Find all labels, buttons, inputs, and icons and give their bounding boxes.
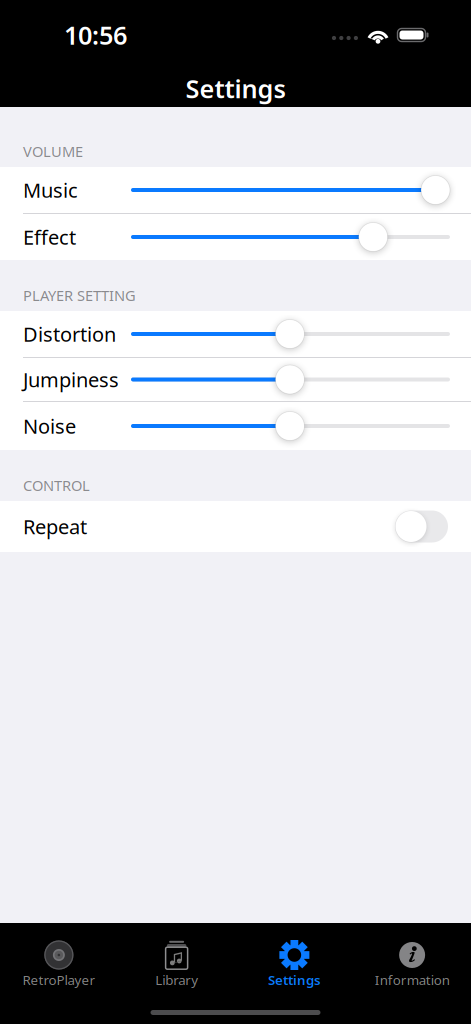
button[interactable]: Repeat <box>0 501 471 552</box>
staticText: Information <box>375 971 450 989</box>
button[interactable]: Library <box>118 923 236 1024</box>
button[interactable]: RetroPlayer <box>0 923 118 1024</box>
staticText: Repeat <box>23 513 87 540</box>
staticText: Settings <box>185 72 285 105</box>
button[interactable]: Settings <box>235 923 353 1024</box>
staticText: Distortion <box>23 321 116 347</box>
staticText: Library <box>155 971 198 989</box>
button[interactable]: Information <box>353 923 471 1024</box>
staticText: RetroPlayer <box>22 971 95 989</box>
staticText: VOLUME <box>23 141 83 161</box>
staticText: Jumpiness <box>23 366 119 393</box>
staticText: CONTROL <box>23 475 90 495</box>
staticText: Effect <box>23 224 76 250</box>
staticText: Noise <box>23 413 76 439</box>
staticText: PLAYER SETTING <box>23 285 136 305</box>
staticText: Settings <box>268 971 321 989</box>
staticText: 10:56 <box>64 18 127 52</box>
staticText: Music <box>23 177 78 203</box>
